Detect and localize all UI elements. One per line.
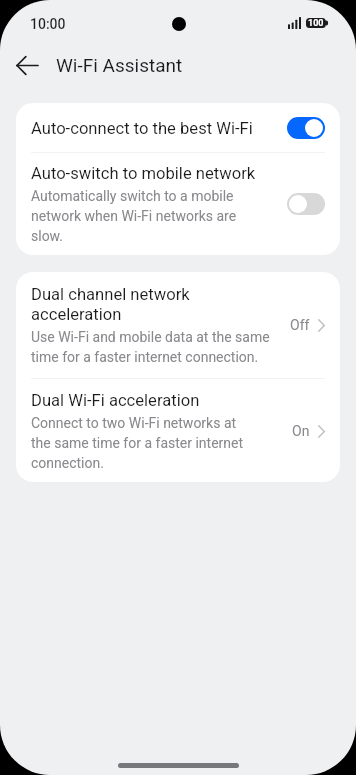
button[interactable]: Back [6, 44, 48, 86]
staticText: Dual Wi-Fi acceleration [31, 390, 200, 410]
staticText: Use Wi-Fi and mobile data at the same ti… [31, 326, 271, 366]
staticText: Connect to two Wi-Fi networks at the sam… [31, 412, 259, 472]
staticText: Auto-switch to mobile network [31, 163, 256, 183]
staticText: 10:00 [30, 16, 66, 32]
button[interactable]: Dual channel network acceleration [16, 272, 340, 378]
staticText: Auto-connect to the best Wi-Fi [31, 118, 253, 138]
button[interactable]: Auto-connect to the best Wi-Fi [16, 103, 340, 152]
staticText: Wi-Fi Assistant [56, 54, 183, 76]
staticText: 100 [308, 18, 324, 28]
staticText: Off [290, 317, 310, 333]
staticText: Automatically switch to a mobile network… [31, 185, 253, 245]
button[interactable]: Off [287, 193, 325, 215]
button[interactable]: Dual Wi-Fi acceleration [16, 379, 340, 482]
button[interactable]: Auto-switch to mobile network [16, 153, 340, 255]
staticText: On [292, 423, 310, 439]
staticText: Dual channel network acceleration [31, 284, 221, 324]
button[interactable]: On [287, 117, 325, 139]
